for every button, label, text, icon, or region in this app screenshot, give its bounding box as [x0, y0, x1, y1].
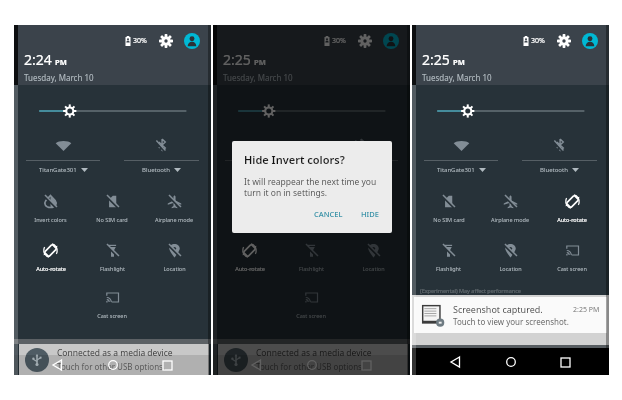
button[interactable]: Bluetooth	[112, 136, 211, 174]
staticText: Flashlight	[299, 265, 324, 272]
button[interactable]: Auto-rotate	[20, 243, 81, 272]
staticText: Cast screen	[296, 312, 326, 319]
staticText: PM	[254, 57, 266, 67]
staticText: 2:25 PM	[573, 305, 600, 315]
staticText: Tuesday, March 10	[24, 72, 94, 83]
staticText: It will reappear the next time you turn …	[244, 176, 383, 198]
staticText: Auto-rotate	[235, 265, 265, 272]
button[interactable]: Airplane mode	[479, 194, 541, 223]
button[interactable]: Recent apps	[355, 355, 377, 375]
button[interactable]: Recent apps	[554, 351, 576, 373]
button[interactable]: Auto-rotate	[541, 194, 603, 223]
staticText: Tuesday, March 10	[223, 72, 293, 83]
staticText: Tuesday, March 10	[422, 72, 492, 83]
button[interactable]: Auto-rotate	[219, 243, 280, 272]
button[interactable]: Flashlight	[280, 243, 342, 272]
button[interactable]: Home	[102, 355, 124, 375]
staticText: 2:24	[24, 50, 52, 69]
staticText: Hide Invert colors?	[244, 152, 345, 167]
button[interactable]: Airplane mode	[342, 194, 404, 223]
staticText: Location	[362, 265, 385, 272]
button[interactable]: Connected as a media device	[19, 344, 209, 375]
button[interactable]: HIDE	[357, 207, 383, 221]
staticText: Touch to view your screenshot.	[453, 316, 569, 327]
staticText: Bluetooth	[142, 166, 170, 174]
button[interactable]: Flashlight	[81, 243, 143, 272]
staticText: Auto-rotate	[557, 216, 587, 223]
staticText: Auto-rotate	[36, 265, 66, 272]
button[interactable]: User profile	[184, 33, 200, 49]
button[interactable]: No SIM card	[280, 194, 342, 223]
button[interactable]: CANCEL	[310, 207, 347, 221]
staticText: No SIM card	[96, 216, 128, 223]
button[interactable]: Cast screen	[280, 290, 342, 319]
staticText: Touch for other USB options.	[57, 361, 166, 372]
button[interactable]: User profile	[383, 33, 399, 49]
staticText: 2:25	[422, 50, 450, 69]
button[interactable]: Invert colors	[219, 194, 280, 223]
button[interactable]: Location	[342, 243, 404, 272]
staticText: (Experimental) May affect performance	[420, 287, 521, 294]
staticText: HIDE	[361, 209, 379, 219]
button[interactable]: Airplane mode	[143, 194, 205, 223]
button[interactable]: Settings	[159, 34, 173, 48]
button[interactable]: Bluetooth	[311, 136, 410, 174]
staticText: No SIM card	[295, 216, 327, 223]
button[interactable]: User profile	[582, 33, 598, 49]
button[interactable]: No SIM card	[418, 194, 479, 223]
staticText: Airplane mode	[491, 216, 529, 223]
staticText: Connected as a media device	[57, 347, 173, 359]
staticText: Connected as a media device	[256, 347, 372, 359]
button[interactable]: TitanGate301	[412, 136, 510, 174]
staticText: Invert colors	[34, 216, 67, 223]
staticText: TitanGate301	[437, 166, 475, 174]
button[interactable]: Cast screen	[541, 243, 603, 272]
button[interactable]: No SIM card	[81, 194, 143, 223]
button[interactable]: Location	[143, 243, 205, 272]
staticText: 30%	[332, 36, 346, 46]
button[interactable]: Location	[479, 243, 541, 272]
staticText: Location	[499, 265, 522, 272]
button[interactable]: Connected as a media device	[218, 344, 408, 375]
button[interactable]: Back	[246, 355, 268, 375]
staticText: 30%	[133, 36, 147, 46]
staticText: TitanGate301	[39, 166, 77, 174]
staticText: CANCEL	[314, 209, 343, 219]
button[interactable]: Home	[500, 351, 522, 373]
button[interactable]: Recent apps	[156, 355, 178, 375]
staticText: Cast screen	[97, 312, 127, 319]
staticText: Airplane mode	[155, 216, 193, 223]
button[interactable]: Settings	[358, 34, 372, 48]
staticText: Touch for other USB options.	[256, 361, 365, 372]
button[interactable]: Home	[301, 355, 323, 375]
button[interactable]: Screenshot captured.	[414, 297, 607, 333]
staticText: No SIM card	[433, 216, 465, 223]
staticText: Flashlight	[100, 265, 125, 272]
staticText: Bluetooth	[540, 166, 568, 174]
button[interactable]: Settings	[557, 34, 571, 48]
staticText: Screenshot captured.	[453, 303, 543, 315]
staticText: Airplane mode	[354, 216, 392, 223]
staticText: Flashlight	[436, 265, 461, 272]
staticText: 30%	[531, 36, 545, 46]
staticText: 2:25	[223, 50, 251, 69]
button[interactable]: Flashlight	[418, 243, 479, 272]
staticText: PM	[55, 57, 67, 67]
button[interactable]: Back	[445, 351, 467, 373]
button[interactable]: TitanGate301	[14, 136, 112, 174]
staticText: PM	[453, 57, 465, 67]
button[interactable]: Cast screen	[81, 290, 143, 319]
button[interactable]: Invert colors	[20, 194, 81, 223]
staticText: Cast screen	[557, 265, 587, 272]
button[interactable]: TitanGate301	[213, 136, 311, 174]
button[interactable]: Bluetooth	[510, 136, 609, 174]
staticText: Location	[163, 265, 186, 272]
button[interactable]: Back	[47, 355, 69, 375]
